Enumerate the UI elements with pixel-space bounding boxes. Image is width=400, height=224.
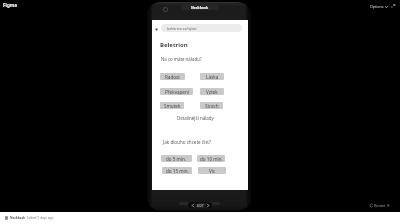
staticText: Figma bbox=[3, 2, 18, 8]
staticText: do 5 min. bbox=[166, 156, 187, 162]
button[interactable]: Překvapení bbox=[160, 88, 193, 95]
button[interactable]: Detailnější nálady bbox=[177, 115, 214, 121]
button[interactable]: Back bbox=[154, 27, 159, 32]
button[interactable]: beletrion.cz/nyber bbox=[161, 24, 242, 32]
button[interactable]: Present bbox=[390, 3, 396, 9]
button[interactable]: do 10 min. bbox=[197, 155, 225, 162]
staticText: do 15 min. bbox=[166, 168, 189, 174]
staticText: 6/27 bbox=[197, 204, 204, 208]
button[interactable]: Radost bbox=[160, 73, 185, 80]
staticText: Radost bbox=[165, 74, 180, 80]
staticText: Vztek bbox=[206, 89, 218, 95]
button[interactable]: Previous frame bbox=[191, 202, 195, 208]
staticText: Restart R bbox=[374, 203, 390, 208]
staticText: do 10 min. bbox=[200, 156, 223, 162]
staticText: Láska bbox=[206, 74, 219, 80]
staticText: Překvapení bbox=[165, 89, 189, 95]
staticText: Smutek bbox=[164, 103, 181, 109]
staticText: Edited 7 days ago bbox=[27, 216, 54, 220]
button[interactable]: Restart bbox=[370, 203, 390, 208]
staticText: Jak dlouho chcete číst? bbox=[163, 139, 211, 145]
button[interactable]: Options bbox=[370, 4, 388, 9]
button[interactable]: Smutek bbox=[160, 102, 184, 109]
staticText: Beletrion bbox=[160, 41, 188, 49]
staticText: Na co máte náladu? bbox=[161, 56, 202, 62]
button[interactable]: do 5 min. bbox=[161, 155, 192, 162]
staticText: Neckbook bbox=[10, 216, 26, 220]
staticText: Neckbook bbox=[191, 5, 209, 10]
button[interactable]: Next frame bbox=[206, 202, 210, 208]
staticText: Víc bbox=[209, 168, 216, 174]
other: Restart bbox=[370, 204, 373, 207]
staticText: Options bbox=[370, 4, 384, 9]
staticText: Strach bbox=[205, 103, 219, 109]
button[interactable]: Vztek bbox=[200, 88, 224, 95]
button[interactable]: Neckbook bbox=[181, 4, 219, 10]
button[interactable]: do 15 min. bbox=[162, 167, 192, 174]
button[interactable]: 6/27 bbox=[195, 203, 206, 208]
button[interactable]: Láska bbox=[200, 73, 224, 80]
button[interactable]: Víc bbox=[198, 167, 226, 174]
button[interactable]: Strach bbox=[200, 102, 223, 109]
staticText: beletrion.cz/nyber bbox=[167, 26, 197, 31]
